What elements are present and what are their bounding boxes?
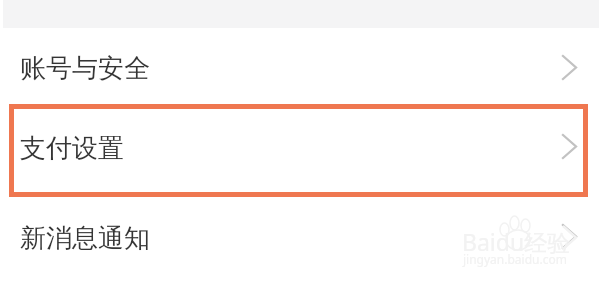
staticText: 账号与安全 [20, 52, 150, 85]
button[interactable]: 支付设置 [0, 115, 604, 181]
other: Open [562, 224, 577, 249]
staticText: jingyan.baidu.com [463, 251, 567, 267]
other: Open [562, 134, 577, 159]
other: Open [562, 55, 577, 80]
staticText: 新消息通知 [20, 222, 150, 255]
button[interactable]: 账号与安全 [0, 35, 604, 101]
staticText: Baidu经验 [462, 226, 571, 257]
staticText: 支付设置 [20, 132, 124, 165]
button[interactable]: 新消息通知 [0, 205, 604, 271]
